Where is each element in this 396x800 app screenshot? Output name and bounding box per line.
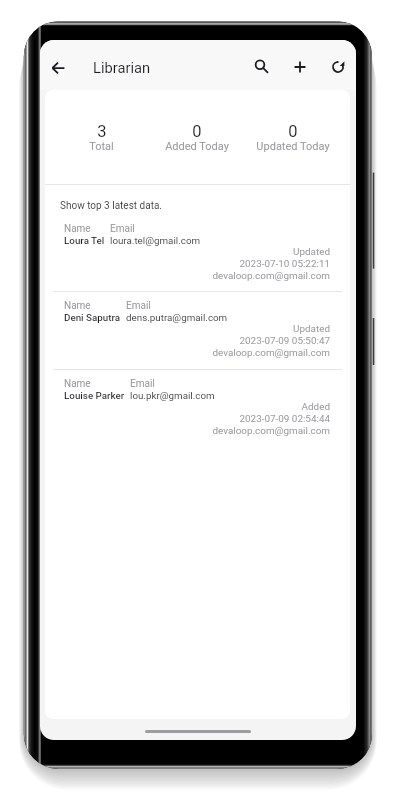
staticText: Deni Saputra <box>64 312 121 323</box>
staticText: Name <box>64 378 91 390</box>
staticText: dens.putra@gmail.com <box>126 312 228 323</box>
staticText: 0 <box>192 122 202 141</box>
staticText: loura.tel@gmail.com <box>110 235 201 246</box>
staticText: Librarian <box>93 59 151 76</box>
button[interactable]: Search <box>243 48 281 86</box>
staticText: Updated Today <box>256 140 330 153</box>
staticText: 3 <box>97 122 107 141</box>
staticText: Email <box>126 300 151 312</box>
staticText: Louise Parker <box>64 390 125 401</box>
button[interactable]: 3 <box>54 90 149 184</box>
staticText: devaloop.com@gmail.com <box>212 347 330 359</box>
staticText: Added <box>301 401 330 413</box>
staticText: Name <box>64 300 91 312</box>
staticText: 0 <box>288 122 298 141</box>
staticText: 2023-07-10 05:22:11 <box>239 258 330 270</box>
button[interactable]: Name <box>45 214 350 291</box>
staticText: Total <box>89 140 114 153</box>
button[interactable]: Navigate up <box>40 49 77 87</box>
staticText: devaloop.com@gmail.com <box>212 270 330 282</box>
staticText: lou.pkr@gmail.com <box>130 390 215 401</box>
staticText: Show top 3 latest data. <box>60 200 163 212</box>
staticText: Loura Tel <box>64 235 105 246</box>
staticText: Email <box>110 223 135 235</box>
button[interactable]: Refresh <box>319 48 356 86</box>
staticText: 2023-07-09 02:54:44 <box>239 413 330 425</box>
staticText: Updated <box>293 323 330 335</box>
button[interactable]: Name <box>45 369 350 446</box>
button[interactable]: 0 <box>149 90 245 184</box>
staticText: Added Today <box>165 140 229 153</box>
staticText: Email <box>130 378 155 390</box>
staticText: 2023-07-09 05:50:47 <box>239 335 330 347</box>
button[interactable]: 0 <box>245 90 341 184</box>
button[interactable]: Add <box>281 48 319 86</box>
staticText: Updated <box>293 246 330 258</box>
staticText: Name <box>64 223 91 235</box>
staticText: devaloop.com@gmail.com <box>212 425 330 437</box>
button[interactable]: Name <box>45 291 350 368</box>
